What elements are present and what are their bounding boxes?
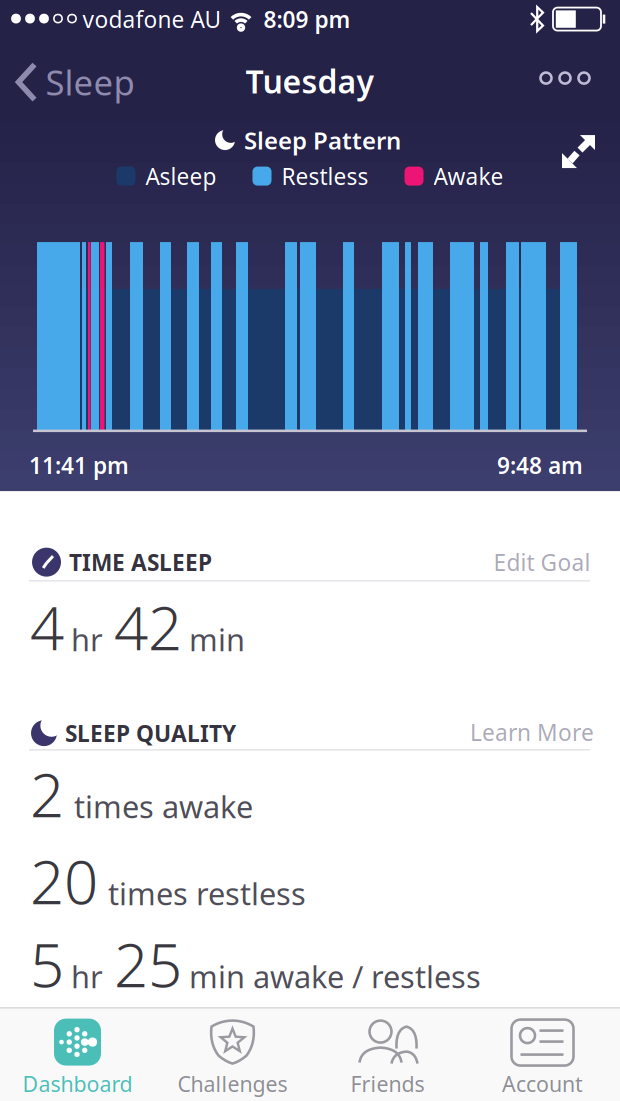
staticText: Edit Goal <box>493 547 590 577</box>
staticText: SLEEP QUALITY <box>65 718 236 748</box>
staticText: hr <box>71 956 103 997</box>
staticText: Asleep <box>145 161 216 191</box>
button[interactable]: Dashboard <box>0 1019 155 1098</box>
staticText: Restless <box>281 161 368 191</box>
button[interactable] <box>562 135 596 169</box>
staticText: 42 <box>114 587 182 667</box>
staticText: 20 <box>30 841 98 921</box>
staticText: Awake <box>433 161 503 191</box>
staticText: Account <box>502 1070 583 1098</box>
staticText: hr <box>71 619 103 660</box>
staticText: min <box>189 619 245 660</box>
staticText: times awake <box>74 786 253 827</box>
staticText: Tuesday <box>245 60 374 102</box>
button[interactable] <box>540 73 589 84</box>
button[interactable]: Challenges <box>155 1019 310 1098</box>
staticText: Dashboard <box>22 1070 132 1098</box>
staticText: Challenges <box>177 1070 287 1098</box>
button[interactable]: Edit Goal <box>493 547 590 577</box>
staticText: 8:09 pm <box>263 4 350 34</box>
button[interactable]: Account <box>465 1019 620 1098</box>
staticText: min awake / restless <box>189 956 481 997</box>
staticText: Friends <box>350 1070 424 1098</box>
staticText: 2 <box>30 754 64 834</box>
staticText: Sleep Pattern <box>244 124 401 156</box>
button[interactable]: Friends <box>310 1019 465 1098</box>
staticText: 4 <box>30 587 64 667</box>
button[interactable]: Sleep <box>15 59 134 105</box>
staticText: Learn More <box>470 717 594 747</box>
staticText: Sleep <box>45 59 134 105</box>
staticText: 9:48 am <box>497 450 583 480</box>
button[interactable]: Learn More <box>470 717 594 747</box>
staticText: 11:41 pm <box>29 450 129 480</box>
staticText: 5 <box>30 924 64 1004</box>
staticText: vodafone AU <box>82 4 221 34</box>
staticText: times restless <box>108 873 306 914</box>
staticText: TIME ASLEEP <box>69 547 212 577</box>
staticText: 25 <box>114 924 182 1004</box>
